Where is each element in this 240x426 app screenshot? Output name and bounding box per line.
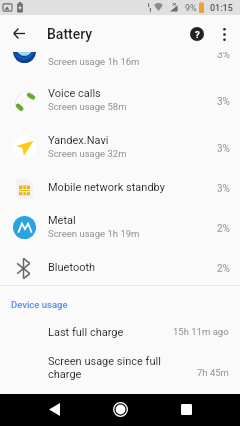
staticText: 9% bbox=[185, 3, 197, 14]
staticText: 3% bbox=[217, 143, 230, 155]
button[interactable] bbox=[0, 172, 240, 205]
button[interactable] bbox=[0, 205, 240, 252]
button[interactable]: More options bbox=[211, 21, 237, 47]
button[interactable]: Help bbox=[184, 21, 210, 47]
staticText: Bluetooth bbox=[48, 261, 96, 274]
staticText: 3% bbox=[217, 96, 230, 108]
button[interactable] bbox=[0, 346, 240, 384]
staticText: Battery bbox=[47, 26, 93, 42]
button[interactable] bbox=[0, 52, 240, 78]
button[interactable] bbox=[0, 318, 240, 346]
staticText: 7h 45m bbox=[197, 367, 229, 378]
staticText: Screen usage 32m bbox=[48, 148, 127, 159]
button[interactable] bbox=[0, 252, 240, 285]
staticText: 15h 11m ago bbox=[173, 326, 229, 337]
staticText: 3% bbox=[217, 52, 230, 61]
staticText: Yandex.Navi bbox=[48, 134, 109, 147]
button[interactable]: Back bbox=[39, 394, 69, 424]
staticText: Metal bbox=[48, 214, 76, 227]
button[interactable] bbox=[0, 78, 240, 125]
staticText: 3% bbox=[217, 183, 230, 195]
button[interactable]: Navigate up bbox=[5, 15, 33, 52]
staticText: 2% bbox=[217, 223, 230, 235]
staticText: Screen usage 1h 19m bbox=[48, 228, 140, 239]
staticText: Voice calls bbox=[48, 87, 101, 100]
staticText: Mobile network standby bbox=[48, 181, 165, 194]
staticText: 01:15 bbox=[210, 3, 233, 14]
staticText: Screen usage 1h 16m bbox=[48, 56, 140, 67]
staticText: Last full charge bbox=[48, 326, 124, 339]
button[interactable] bbox=[0, 125, 240, 172]
button[interactable]: Recent apps bbox=[171, 394, 201, 424]
staticText: ? bbox=[195, 29, 200, 40]
staticText: 2% bbox=[217, 263, 230, 275]
staticText: Device usage bbox=[11, 299, 68, 310]
staticText: Screen usage since full charge bbox=[48, 355, 164, 381]
button[interactable]: Home bbox=[105, 394, 135, 424]
staticText: Screen usage 58m bbox=[48, 101, 127, 112]
